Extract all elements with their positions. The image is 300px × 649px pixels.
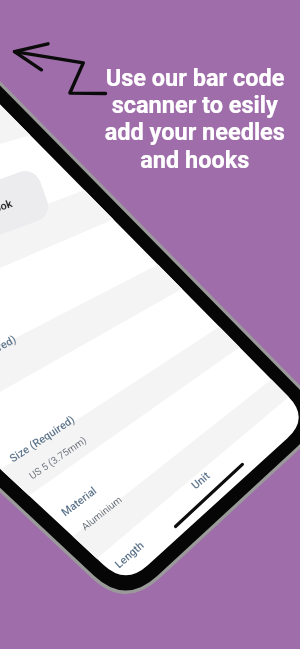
other: Bar code scanner promo screenshot (0, 0, 300, 649)
